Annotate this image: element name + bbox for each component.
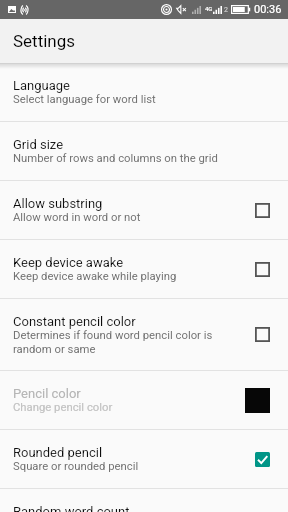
staticText: Square or rounded pencil — [13, 460, 139, 473]
button[interactable]: Constant pencil color — [255, 327, 270, 342]
staticText: Keep device awake — [13, 255, 124, 270]
button[interactable]: Grid size — [0, 122, 288, 180]
button[interactable]: Pencil color — [0, 371, 288, 429]
staticText: Number of rows and columns on the grid — [13, 152, 218, 165]
button[interactable]: Constant pencil color — [0, 299, 288, 370]
staticText: Allow substring — [13, 196, 103, 211]
staticText: Constant pencil color — [13, 314, 136, 329]
button[interactable]: Language — [0, 63, 288, 121]
staticText: Allow word in word or not — [13, 211, 141, 224]
button[interactable]: Rounded pencil — [0, 430, 288, 488]
staticText: 4G — [205, 5, 213, 12]
staticText: Select language for word list — [13, 93, 156, 106]
button[interactable]: Allow substring — [255, 203, 270, 218]
button[interactable]: Keep device awake — [255, 262, 270, 277]
staticText: Change pencil color — [13, 401, 113, 414]
button[interactable]: Allow substring — [0, 181, 288, 239]
staticText: Keep device awake while playing — [13, 270, 177, 283]
button[interactable]: Random word count — [0, 489, 288, 512]
button[interactable]: Rounded pencil — [255, 452, 270, 467]
staticText: Pencil color — [13, 386, 81, 401]
staticText: Determines if found word pencil color is… — [13, 329, 241, 355]
button[interactable]: Keep device awake — [0, 240, 288, 298]
staticText: Grid size — [13, 137, 64, 152]
staticText: Rounded pencil — [13, 445, 103, 460]
staticText: Language — [13, 78, 70, 93]
staticText: 2 — [224, 6, 228, 14]
staticText: Random word count — [13, 504, 130, 512]
staticText: Settings — [13, 31, 76, 51]
staticText: 00:36 — [254, 3, 282, 16]
